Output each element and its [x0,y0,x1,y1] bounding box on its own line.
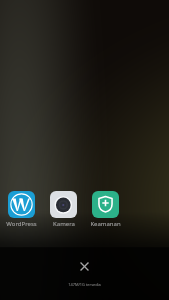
button[interactable]: Kamera [50,191,77,228]
button[interactable]: WordPress [8,191,35,228]
staticText: 147M/1G tersedia [68,282,101,287]
button[interactable]: Close [76,258,93,275]
staticText: Kamera [53,220,75,228]
button[interactable]: Keamanan [92,191,119,228]
staticText: Keamanan [90,220,121,228]
staticText: WordPress [6,220,37,228]
